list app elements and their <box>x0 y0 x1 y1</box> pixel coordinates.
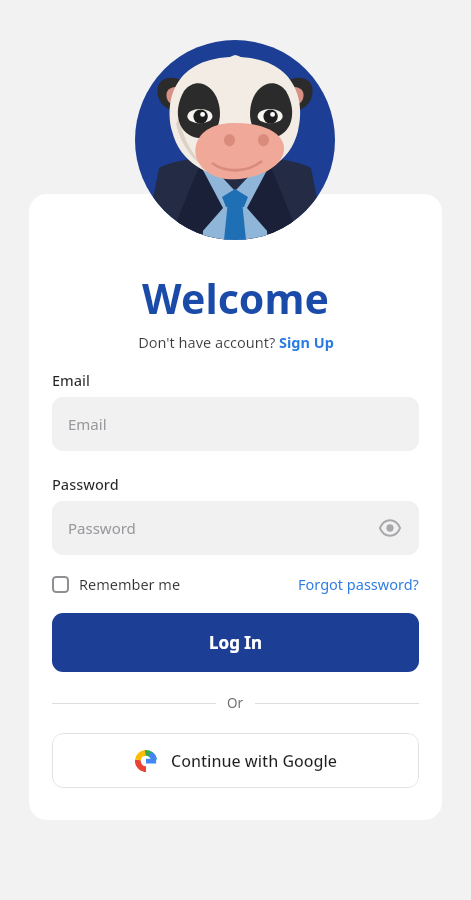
staticText: Continue with Google <box>171 750 337 772</box>
button[interactable]: Email <box>52 397 419 451</box>
other: Profile avatar <box>135 40 335 240</box>
staticText: Or <box>227 694 244 712</box>
staticText: Welcome <box>52 270 419 326</box>
button[interactable]: Forgot password? <box>298 574 419 594</box>
staticText: Password <box>52 474 119 494</box>
staticText: Log In <box>209 631 262 654</box>
button[interactable]: Password <box>52 501 419 555</box>
button[interactable]: Remember me <box>52 574 181 594</box>
staticText: Email <box>52 370 90 390</box>
staticText: Don't have account? Sign Up <box>138 332 334 352</box>
button[interactable]: Continue with Google <box>52 733 419 788</box>
staticText: Password <box>68 518 136 538</box>
staticText: Forgot password? <box>298 574 419 594</box>
staticText: Remember me <box>79 574 181 594</box>
button[interactable]: Don't have account? Sign Up <box>52 332 419 352</box>
staticText: Email <box>68 414 107 434</box>
button[interactable]: Log In <box>52 613 419 672</box>
button[interactable]: Show password <box>377 515 403 541</box>
